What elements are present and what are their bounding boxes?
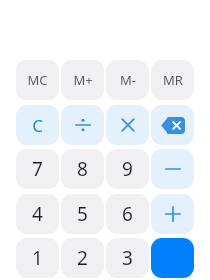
button[interactable]: 4 bbox=[16, 194, 59, 234]
staticText: 6 bbox=[122, 201, 133, 227]
staticText: 7 bbox=[32, 156, 43, 182]
staticText: MR bbox=[163, 71, 183, 89]
staticText: MC bbox=[27, 71, 48, 89]
staticText: 1 bbox=[32, 245, 43, 271]
button[interactable]: 5 bbox=[61, 194, 104, 234]
button[interactable]: 8 bbox=[61, 149, 104, 189]
button[interactable]: 6 bbox=[106, 194, 149, 234]
staticText: 8 bbox=[77, 156, 88, 182]
button[interactable]: MR bbox=[151, 60, 194, 100]
button[interactable]: C bbox=[16, 105, 59, 145]
button[interactable]: Backspace bbox=[151, 105, 194, 145]
staticText: 9 bbox=[122, 156, 133, 182]
button[interactable]: M- bbox=[106, 60, 149, 100]
button[interactable]: 2 bbox=[61, 238, 104, 278]
staticText: 3 bbox=[122, 245, 133, 271]
button[interactable]: Plus bbox=[151, 194, 194, 234]
staticText: M- bbox=[120, 71, 136, 89]
button[interactable]: 1 bbox=[16, 238, 59, 278]
button[interactable]: 7 bbox=[16, 149, 59, 189]
staticText: M+ bbox=[73, 71, 93, 89]
button[interactable]: Minus bbox=[151, 149, 194, 189]
button[interactable]: Multiply bbox=[106, 105, 149, 145]
staticText: 4 bbox=[32, 201, 43, 227]
button[interactable]: MC bbox=[16, 60, 59, 100]
staticText: C bbox=[32, 114, 43, 137]
button[interactable]: Equals bbox=[151, 238, 194, 278]
staticText: 2 bbox=[77, 245, 88, 271]
button[interactable]: 3 bbox=[106, 238, 149, 278]
staticText: 5 bbox=[77, 201, 88, 227]
button[interactable]: M+ bbox=[61, 60, 104, 100]
button[interactable]: Divide bbox=[61, 105, 104, 145]
button[interactable]: 9 bbox=[106, 149, 149, 189]
